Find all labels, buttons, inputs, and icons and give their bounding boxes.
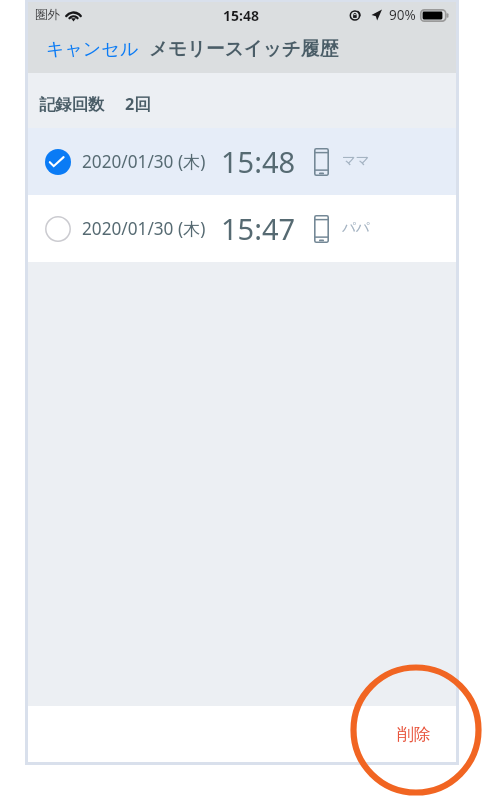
staticText: 2020/01/30 (木) [82,150,206,173]
staticText: 削除 [397,724,431,745]
button[interactable]: キャンセル [28,31,145,68]
staticText: 15:48 [223,6,259,25]
staticText: 圏外 [35,7,60,23]
button[interactable]: 削除 [373,712,456,757]
button[interactable]: 2020/01/30 (木) [28,128,456,195]
staticText: 記録回数 [39,94,105,115]
staticText: ママ [342,152,370,169]
staticText: 90% [389,6,416,24]
staticText: 2020/01/30 (木) [82,217,206,240]
staticText: パパ [342,219,370,236]
staticText: 15:47 [221,209,296,248]
button[interactable]: 2020/01/30 (木) [28,195,456,262]
staticText: 2回 [125,93,151,115]
staticText: キャンセル [46,38,139,61]
staticText: 15:48 [221,142,296,181]
staticText: メモリースイッチ履歴 [149,37,338,60]
